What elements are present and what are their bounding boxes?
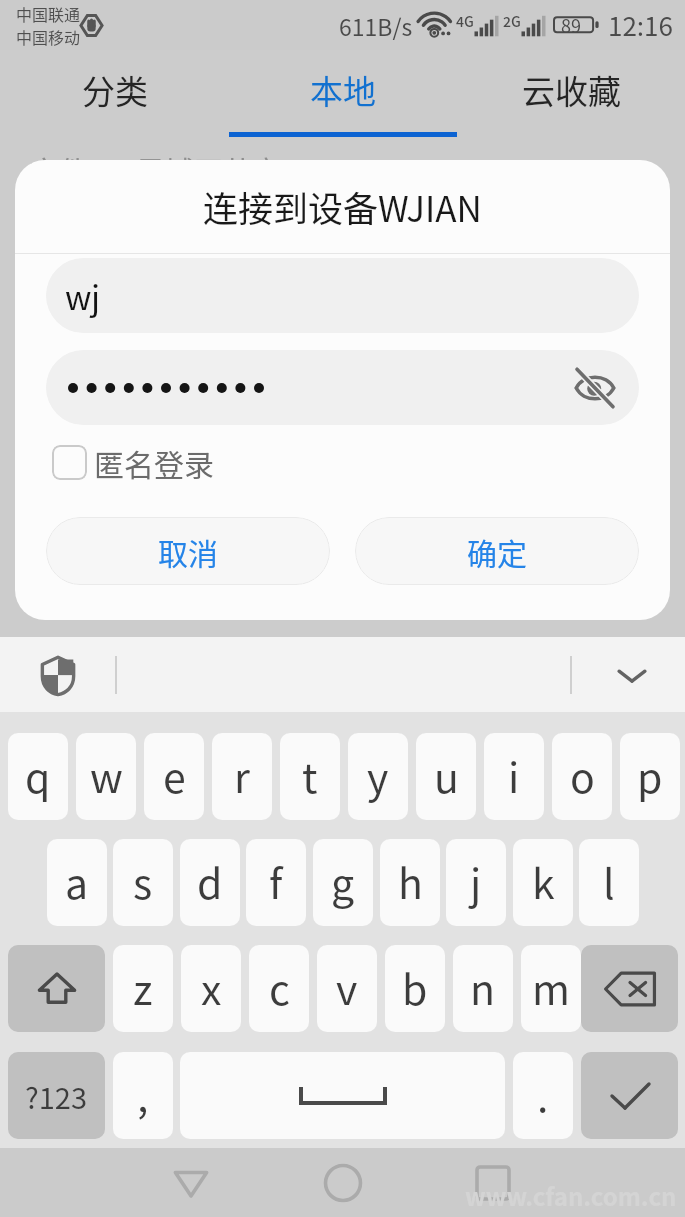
staticText: e [163, 745, 186, 804]
staticText: . [537, 1064, 549, 1123]
staticText: j [470, 851, 482, 910]
staticText: 分类 [82, 66, 148, 114]
staticText: 连接到设备WJIAN [203, 181, 482, 232]
staticText: 中国联通 [16, 2, 81, 25]
staticText: 云收藏 [522, 66, 621, 114]
staticText: 4G [456, 11, 474, 31]
button[interactable]: x [181, 945, 241, 1032]
staticText: m [532, 957, 570, 1016]
staticText: i [508, 745, 520, 804]
button[interactable]: o [552, 733, 612, 820]
staticText: h [398, 851, 423, 910]
button[interactable]: 本地 [229, 50, 457, 137]
staticText: 2G [503, 11, 521, 31]
staticText: w [90, 745, 123, 804]
button[interactable]: u [416, 733, 476, 820]
staticText: › [300, 145, 311, 194]
button[interactable]: 云收藏 [457, 50, 685, 137]
button[interactable]: Show password [571, 364, 619, 412]
staticText: 89 [561, 12, 581, 38]
button[interactable]: Home [319, 1159, 367, 1207]
staticText: o [570, 745, 595, 804]
button[interactable]: a [47, 839, 107, 926]
staticText: 文件 [30, 149, 89, 191]
button[interactable]: 确定 [355, 517, 639, 585]
staticText: 中国移动 [16, 25, 81, 48]
staticText: 匿名登录 [94, 441, 214, 484]
button[interactable]: s [113, 839, 173, 926]
staticText: , [137, 1064, 149, 1123]
button[interactable]: y [348, 733, 408, 820]
button[interactable]: b [385, 945, 445, 1032]
staticText: wj [65, 272, 101, 320]
staticText: l [603, 851, 615, 910]
button[interactable]: Show password [46, 350, 639, 425]
staticText: 本地 [310, 66, 376, 114]
staticText: t [302, 745, 318, 804]
button[interactable]: Back [167, 1159, 215, 1207]
staticText: g [331, 851, 355, 910]
button[interactable]: Security [38, 655, 78, 695]
staticText: q [25, 745, 51, 804]
button[interactable]: g [313, 839, 373, 926]
staticText: 取消 [158, 530, 218, 573]
button[interactable]: k [513, 839, 573, 926]
staticText: u [434, 745, 459, 804]
button[interactable]: 匿名登录 [52, 436, 214, 488]
staticText: f [269, 851, 283, 910]
button[interactable]: i [484, 733, 544, 820]
button[interactable]: Backspace [581, 945, 678, 1032]
button[interactable]: 取消 [46, 517, 330, 585]
button[interactable]: n [453, 945, 513, 1032]
button[interactable]: r [212, 733, 272, 820]
button[interactable]: d [180, 839, 240, 926]
button[interactable]: 分类 [0, 50, 229, 137]
button[interactable]: c [249, 945, 309, 1032]
staticText: a [65, 851, 89, 910]
button[interactable]: j [446, 839, 506, 926]
button[interactable]: p [620, 733, 680, 820]
staticText: z [133, 957, 153, 1016]
button[interactable]: t [280, 733, 340, 820]
staticText: 确定 [467, 530, 527, 573]
staticText: k [532, 851, 555, 910]
button[interactable]: Hide keyboard [609, 652, 655, 698]
staticText: p [637, 745, 663, 804]
staticText: r [234, 745, 250, 804]
button[interactable]: f [246, 839, 306, 926]
staticText: s [133, 851, 153, 910]
staticText: ?123 [25, 1075, 88, 1117]
button[interactable]: Space [180, 1052, 505, 1139]
staticText: 611B/s [339, 9, 413, 42]
button[interactable]: Recents [469, 1159, 517, 1207]
button[interactable]: h [380, 839, 440, 926]
button[interactable]: wj [46, 258, 639, 333]
staticText: v [336, 957, 358, 1016]
staticText: 12:16 [608, 6, 673, 44]
staticText: www.cfan.com.cn [465, 1178, 677, 1213]
staticText: › [107, 145, 118, 194]
button[interactable]: q [8, 733, 68, 820]
staticText: y [367, 745, 389, 804]
button[interactable]: l [579, 839, 639, 926]
staticText: d [197, 851, 223, 910]
staticText: b [402, 957, 428, 1016]
button[interactable]: ?123 [8, 1052, 105, 1139]
button[interactable]: m [521, 945, 581, 1032]
button[interactable]: e [144, 733, 204, 820]
staticText: c [269, 957, 290, 1016]
button[interactable]: Enter [581, 1052, 678, 1139]
button[interactable]: , [113, 1052, 173, 1139]
button[interactable]: . [513, 1052, 573, 1139]
button[interactable]: z [113, 945, 173, 1032]
staticText: x [201, 957, 222, 1016]
button[interactable]: Shift [8, 945, 105, 1032]
staticText: 局域网共享 [136, 149, 282, 191]
button[interactable]: v [317, 945, 377, 1032]
button[interactable]: w [76, 733, 136, 820]
staticText: n [470, 957, 496, 1016]
